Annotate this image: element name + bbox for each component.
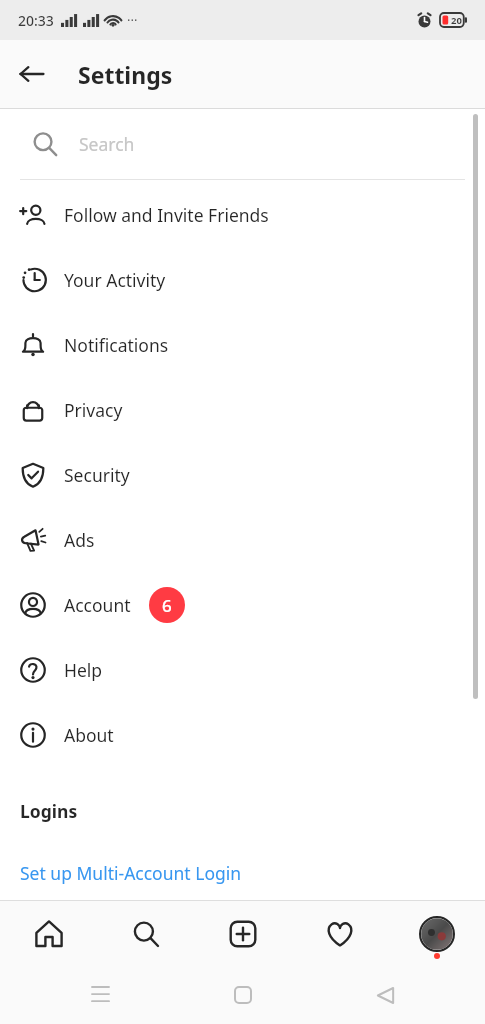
button[interactable]: Your Activity <box>0 247 485 312</box>
button[interactable]: Account <box>0 572 485 637</box>
button[interactable]: Search <box>97 901 194 966</box>
staticText: 20:33 <box>18 11 54 30</box>
button[interactable]: Back <box>365 975 405 1015</box>
staticText: Notifications <box>64 333 169 357</box>
button[interactable]: Help <box>0 637 485 702</box>
button[interactable]: Profile <box>388 901 485 966</box>
staticText: Security <box>64 463 130 487</box>
button[interactable]: Ads <box>0 507 485 572</box>
staticText: 6 <box>162 594 172 617</box>
staticText: About <box>64 723 114 747</box>
button[interactable]: Home <box>223 975 263 1015</box>
staticText: Help <box>64 658 103 682</box>
button[interactable]: Privacy <box>0 377 485 442</box>
staticText: Set up Multi-Account Login <box>20 861 242 885</box>
button[interactable]: Notifications <box>0 312 485 377</box>
staticText: Ads <box>64 528 95 552</box>
staticText: Search <box>79 132 135 156</box>
staticText: 20 <box>451 14 462 27</box>
button[interactable]: Set up Multi-Account Login <box>0 861 485 885</box>
staticText: Account <box>64 593 131 617</box>
staticText: ··· <box>127 11 138 29</box>
button[interactable]: Activity <box>291 901 388 966</box>
button[interactable]: Security <box>0 442 485 507</box>
button[interactable]: Home <box>0 901 97 966</box>
staticText: Logins <box>20 799 78 823</box>
staticText: Privacy <box>64 398 123 422</box>
button[interactable]: About <box>0 702 485 767</box>
staticText: Settings <box>78 59 173 90</box>
staticText: Your Activity <box>64 268 166 292</box>
button[interactable]: New Post <box>194 901 291 966</box>
staticText: Follow and Invite Friends <box>64 203 269 227</box>
button[interactable]: Back <box>8 50 56 98</box>
button[interactable]: Search <box>0 109 485 179</box>
button[interactable]: Recents <box>80 975 120 1015</box>
button[interactable]: Follow and Invite Friends <box>0 182 485 247</box>
